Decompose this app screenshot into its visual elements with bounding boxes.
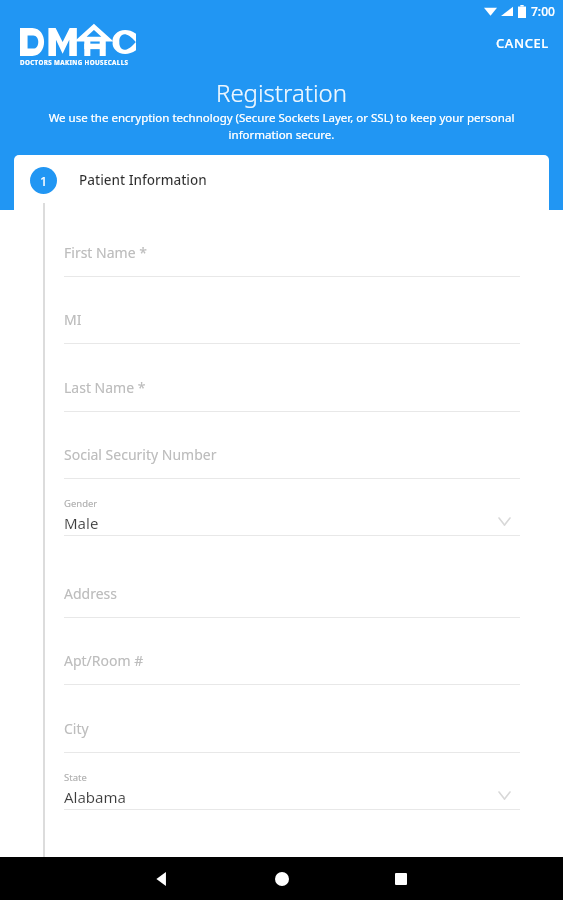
staticText: State	[64, 771, 87, 784]
button[interactable]: Social Security Number	[64, 445, 520, 479]
staticText: Patient Information	[79, 171, 207, 189]
button[interactable]: Recent apps	[379, 857, 423, 900]
staticText: DOCTORS MAKING HOUSECALLS	[20, 58, 129, 66]
staticText: Registration	[216, 76, 347, 109]
button[interactable]: MI	[64, 310, 520, 344]
staticText: First Name *	[64, 243, 147, 262]
staticText: 1	[40, 172, 48, 190]
staticText: Male	[64, 513, 99, 533]
staticText: We use the encryption technology (Secure…	[30, 110, 533, 143]
button[interactable]: 1	[14, 155, 549, 205]
button[interactable]: Last Name *	[64, 378, 520, 412]
staticText: Address	[64, 584, 117, 603]
button[interactable]: Gender	[64, 497, 520, 536]
staticText: Last Name *	[64, 378, 146, 397]
button[interactable]: First Name *	[64, 243, 520, 277]
button[interactable]: Home	[260, 857, 304, 900]
button[interactable]: Apt/Room #	[64, 651, 520, 685]
staticText: Gender	[64, 497, 98, 510]
button[interactable]: Address	[64, 584, 520, 618]
staticText: Alabama	[64, 787, 126, 807]
button[interactable]: Back	[140, 857, 184, 900]
staticText: Apt/Room #	[64, 651, 144, 670]
staticText: City	[64, 719, 89, 738]
button[interactable]: City	[64, 719, 520, 753]
button[interactable]: CANCEL	[482, 28, 563, 58]
staticText: CANCEL	[496, 34, 549, 52]
button[interactable]: State	[64, 771, 520, 810]
staticText: Social Security Number	[64, 445, 217, 464]
staticText: MI	[64, 310, 82, 329]
staticText: 7:00	[531, 3, 555, 19]
